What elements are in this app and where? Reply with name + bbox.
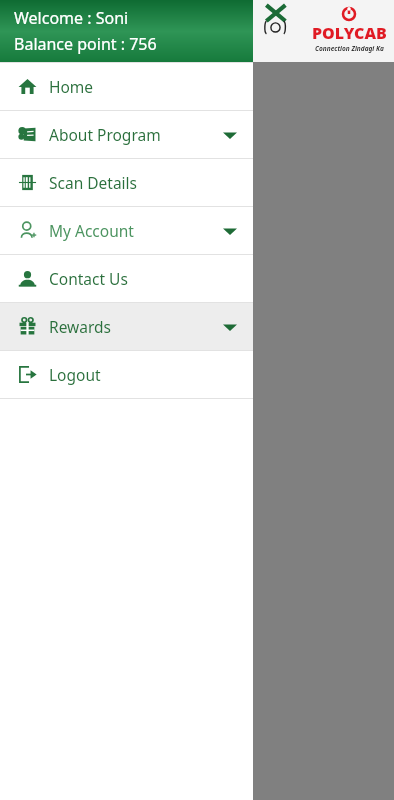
staticText: Scan Details bbox=[49, 172, 138, 193]
staticText: POLYCAB bbox=[312, 22, 387, 44]
staticText: Rewards bbox=[49, 316, 112, 337]
button[interactable]: My Account bbox=[0, 207, 253, 254]
staticText: Home bbox=[49, 76, 94, 97]
staticText: Contact Us bbox=[49, 268, 128, 289]
button[interactable]: Scan Details bbox=[0, 159, 253, 206]
button[interactable]: Close bbox=[258, 2, 296, 40]
staticText: Logout bbox=[49, 364, 101, 385]
staticText: About Program bbox=[49, 124, 161, 145]
staticText: Welcome : Soni bbox=[14, 7, 129, 29]
staticText: Scan History bbox=[14, 69, 125, 95]
staticText: Balance point : 756 bbox=[14, 33, 157, 55]
button[interactable]: Home bbox=[0, 63, 253, 110]
button[interactable]: Contact Us bbox=[0, 255, 253, 302]
button[interactable]: Logout bbox=[0, 351, 253, 398]
staticText: Scan Details bbox=[8, 256, 82, 274]
staticText: Show entries bbox=[14, 164, 87, 180]
staticText: My Account bbox=[49, 220, 134, 241]
button[interactable]: Rewards bbox=[0, 303, 253, 350]
button[interactable]: About Program bbox=[0, 111, 253, 158]
staticText: Polycab Wires Pvt Ltd. Product: 1.5 sqmm… bbox=[8, 305, 155, 390]
staticText: Point Earned bbox=[208, 247, 252, 283]
staticText: Connection Zindagi Ka bbox=[315, 44, 384, 53]
